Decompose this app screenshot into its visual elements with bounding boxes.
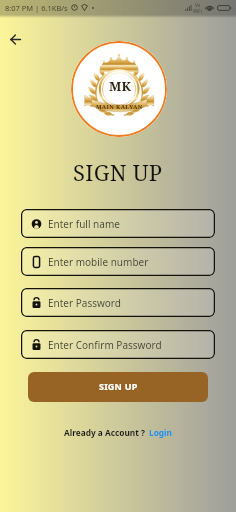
staticText: Enter Confirm Password <box>48 338 162 352</box>
button[interactable]: SIGN UP <box>28 372 208 402</box>
button[interactable]: Login <box>149 427 172 438</box>
staticText: 8:07 PM | 6.1KB/s <box>5 3 68 13</box>
staticText: MAIN KALYAN <box>96 103 143 111</box>
staticText: Enter mobile number <box>48 255 149 269</box>
button[interactable]: Enter full name <box>21 209 215 238</box>
button[interactable]: Enter Confirm Password <box>21 330 215 359</box>
staticText: SIGN UP <box>99 380 138 392</box>
staticText: Enter full name <box>48 217 120 231</box>
button[interactable]: Back <box>2 26 29 53</box>
staticText: Already a Account ? <box>64 427 145 438</box>
staticText: MK <box>109 77 131 95</box>
staticText: Login <box>149 427 172 438</box>
button[interactable]: Enter mobile number <box>21 247 215 276</box>
staticText: SIGN UP <box>73 157 163 187</box>
staticText: WiFi <box>193 8 202 14</box>
button[interactable]: Enter Password <box>21 288 215 317</box>
staticText: Enter Password <box>48 296 121 310</box>
staticText: Vo <box>195 2 201 8</box>
